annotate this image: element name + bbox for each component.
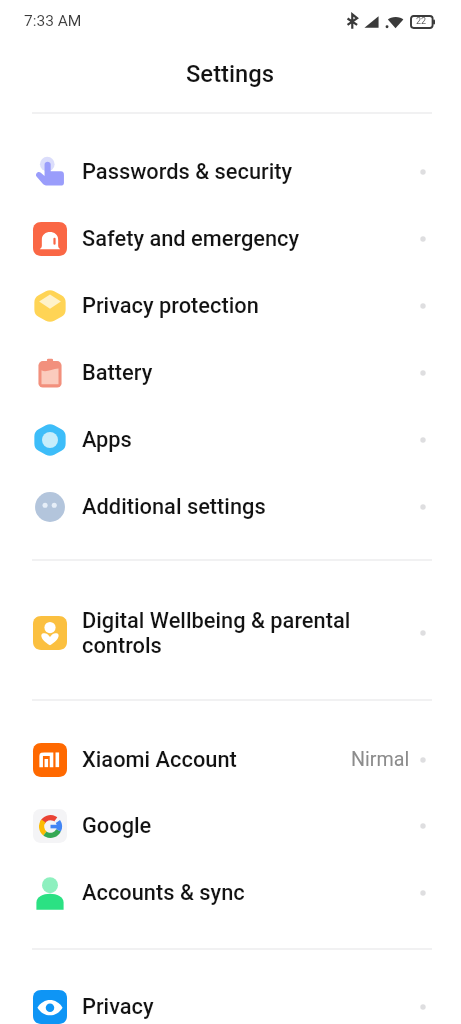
button[interactable]: Digital Wellbeing & parental controls [0, 599, 461, 666]
staticText: Additional settings [82, 494, 266, 520]
staticText: Apps [82, 427, 132, 453]
button[interactable]: Privacy protection [0, 272, 461, 339]
staticText: Xiaomi Account [82, 747, 237, 773]
staticText: Google [82, 813, 152, 839]
staticText: Battery [82, 360, 153, 386]
button[interactable]: Safety and emergency [0, 205, 461, 272]
button[interactable]: Apps [0, 406, 461, 473]
staticText: Safety and emergency [82, 226, 300, 252]
staticText: Privacy protection [82, 293, 259, 319]
staticText: Passwords & security [82, 159, 293, 185]
staticText: Privacy [82, 994, 154, 1020]
button[interactable]: Passwords & security [0, 138, 461, 205]
staticText: Digital Wellbeing & parental controls [82, 608, 367, 658]
button[interactable]: Battery [0, 339, 461, 406]
staticText: Settings [186, 60, 275, 88]
staticText: Nirmal [351, 748, 410, 771]
staticText: Accounts & sync [82, 880, 245, 906]
button[interactable]: Xiaomi Account [0, 726, 461, 793]
button[interactable]: Accounts & sync [0, 859, 461, 926]
button[interactable]: Additional settings [0, 473, 461, 540]
staticText: 7:33 AM [24, 12, 82, 30]
button[interactable]: Privacy [0, 973, 461, 1024]
button[interactable]: Google [0, 792, 461, 859]
staticText: 22 [416, 16, 427, 27]
